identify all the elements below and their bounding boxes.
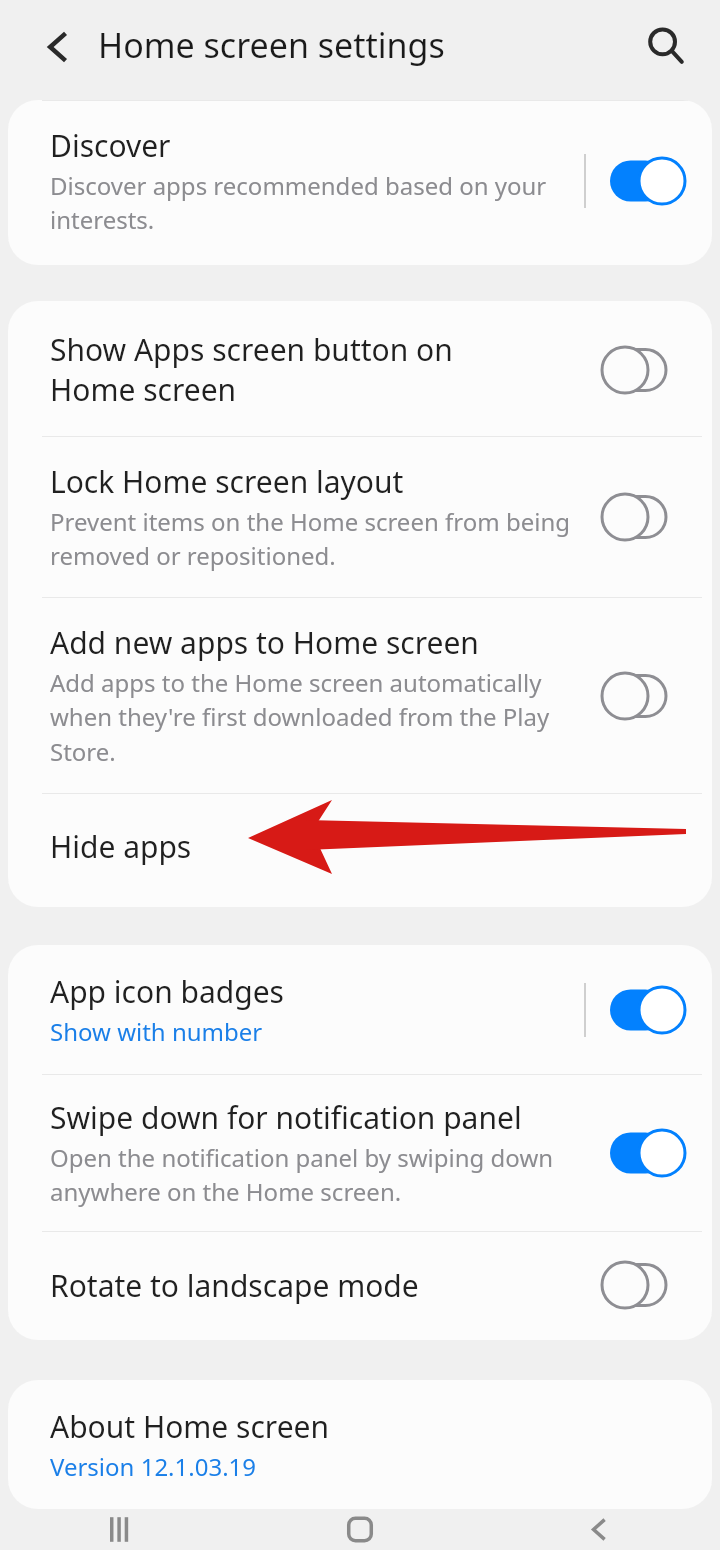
staticText: Version 12.1.03.19 xyxy=(50,1450,257,1483)
button[interactable]: App icon badges xyxy=(8,945,712,1074)
button[interactable]: Recents xyxy=(0,1509,240,1550)
staticText: Rotate to landscape mode xyxy=(50,1265,419,1306)
staticText: Show with number xyxy=(50,1015,263,1048)
staticText: About Home screen xyxy=(50,1406,330,1447)
staticText: Hide apps xyxy=(50,826,192,867)
staticText: Discover xyxy=(50,125,171,166)
staticText: Lock Home screen layout xyxy=(50,461,404,502)
button[interactable]: Back xyxy=(26,16,88,78)
button[interactable]: Toggle on xyxy=(602,981,698,1039)
button[interactable]: Toggle off xyxy=(602,341,698,399)
staticText: Show Apps screen button on Home screen xyxy=(50,329,453,410)
button[interactable]: Search xyxy=(634,14,696,76)
staticText: Add apps to the Home screen automaticall… xyxy=(50,666,550,769)
button[interactable]: Show Apps screen button on Home screen xyxy=(8,301,712,436)
button[interactable]: Rotate to landscape mode xyxy=(8,1232,712,1340)
staticText: Home screen settings xyxy=(98,22,445,68)
staticText: Add new apps to Home screen xyxy=(50,622,479,663)
staticText: App icon badges xyxy=(50,971,284,1012)
staticText: Swipe down for notification panel xyxy=(50,1097,522,1138)
button[interactable]: About Home screen xyxy=(8,1380,712,1509)
button[interactable]: Home xyxy=(240,1509,480,1550)
button[interactable]: Toggle off xyxy=(602,1256,698,1314)
button[interactable]: Toggle off xyxy=(602,488,698,546)
button[interactable]: Back xyxy=(480,1509,720,1550)
button[interactable]: Toggle on xyxy=(602,1124,698,1182)
staticText: Discover apps recommended based on your … xyxy=(50,169,547,237)
staticText: Prevent items on the Home screen from be… xyxy=(50,505,570,573)
button[interactable]: Toggle off xyxy=(602,667,698,725)
button[interactable]: Hide apps xyxy=(8,794,712,907)
button[interactable]: Add new apps to Home screen xyxy=(8,598,712,793)
staticText: Open the notification panel by swiping d… xyxy=(50,1141,554,1209)
button[interactable]: Lock Home screen layout xyxy=(8,437,712,597)
button[interactable]: Discover xyxy=(8,101,712,265)
button[interactable]: Swipe down for notification panel xyxy=(8,1075,712,1231)
button[interactable]: Toggle on xyxy=(602,152,698,210)
